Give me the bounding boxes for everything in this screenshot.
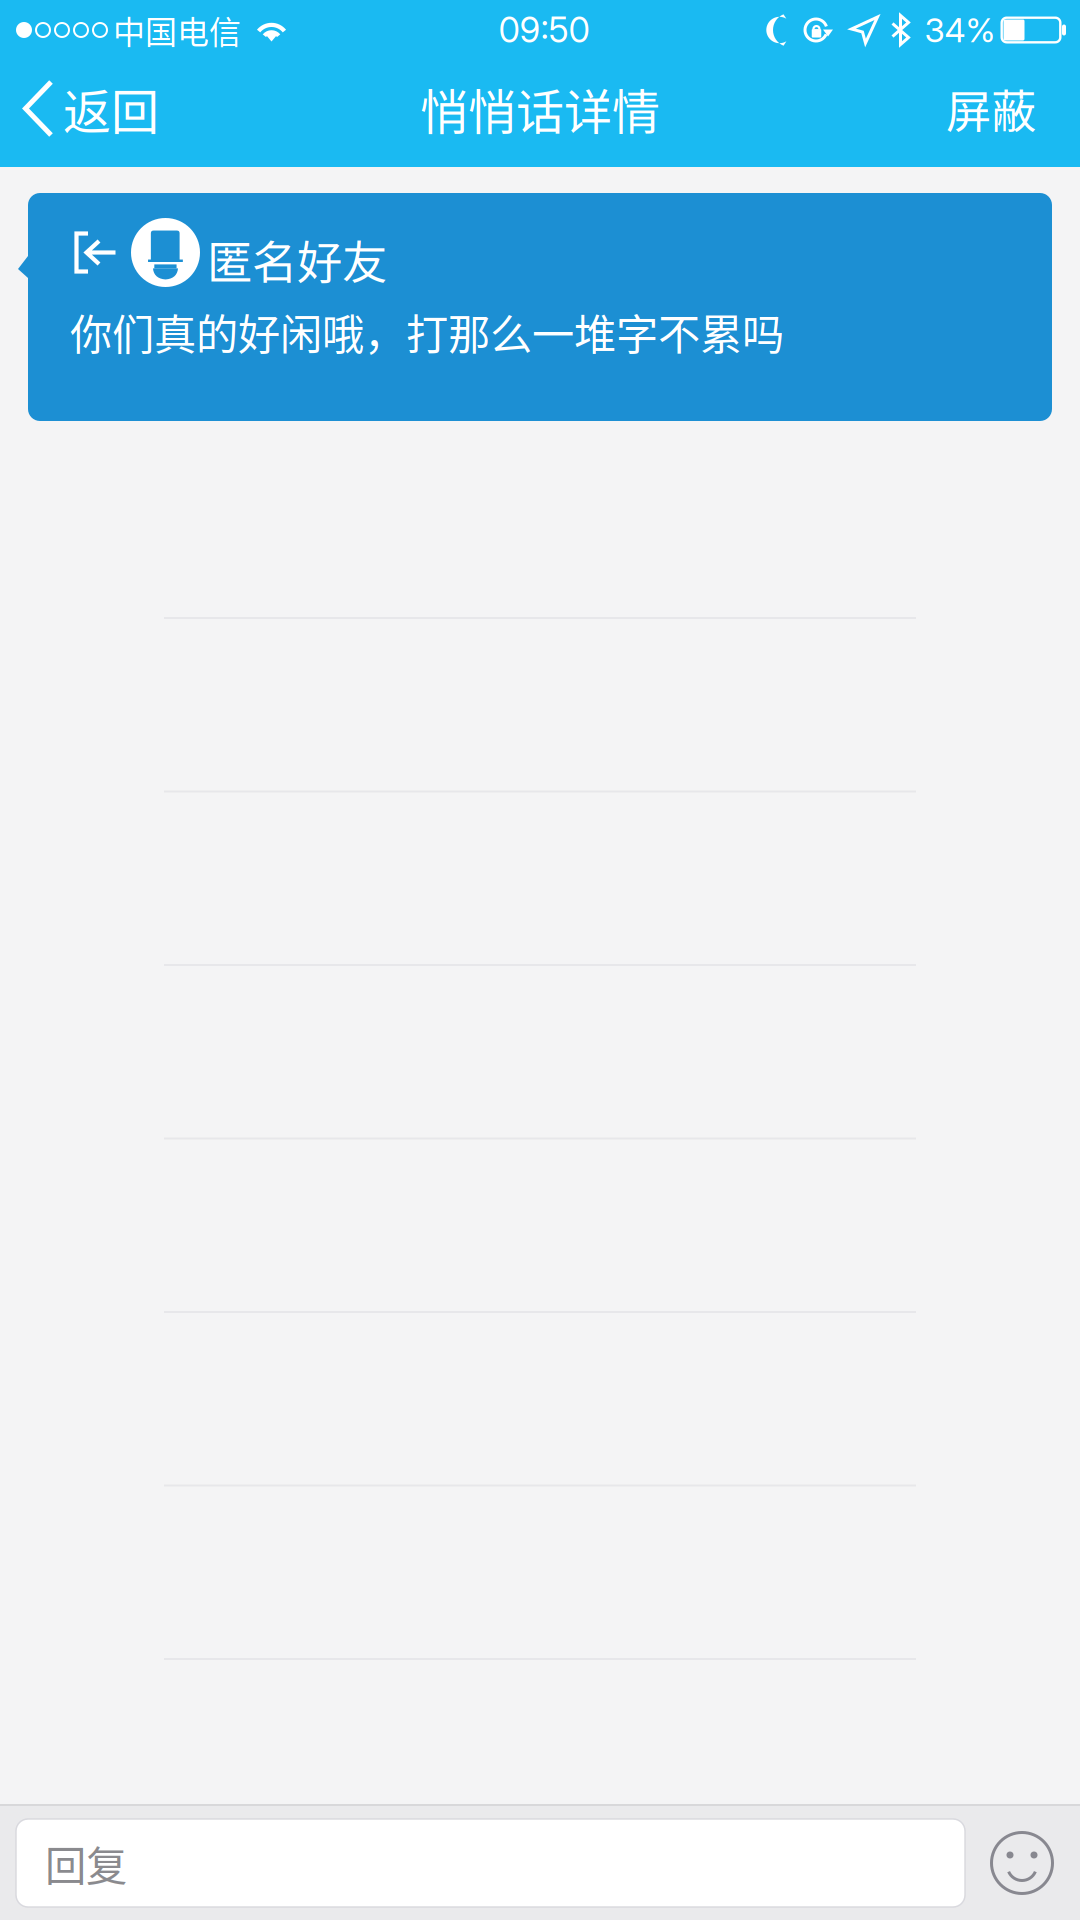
staticText: 返回	[63, 74, 159, 143]
staticText: 09:50	[498, 9, 589, 51]
staticText: 屏蔽	[946, 76, 1036, 141]
staticText: 匿名好友	[207, 227, 387, 292]
button[interactable]: 匿名好友	[0, 193, 1080, 421]
staticText: 回复	[45, 1833, 127, 1893]
staticText: 你们真的好闲哦，打那么一堆字不累吗	[70, 301, 784, 362]
button[interactable]: 返回	[0, 60, 179, 167]
staticText: 中国电信	[113, 7, 241, 53]
staticText: 34%	[924, 10, 995, 50]
button[interactable]: Emoji	[989, 1830, 1055, 1896]
button[interactable]: 回复	[16, 1819, 965, 1907]
button[interactable]: 屏蔽	[926, 60, 1080, 167]
staticText: 悄悄话详情	[420, 74, 660, 143]
